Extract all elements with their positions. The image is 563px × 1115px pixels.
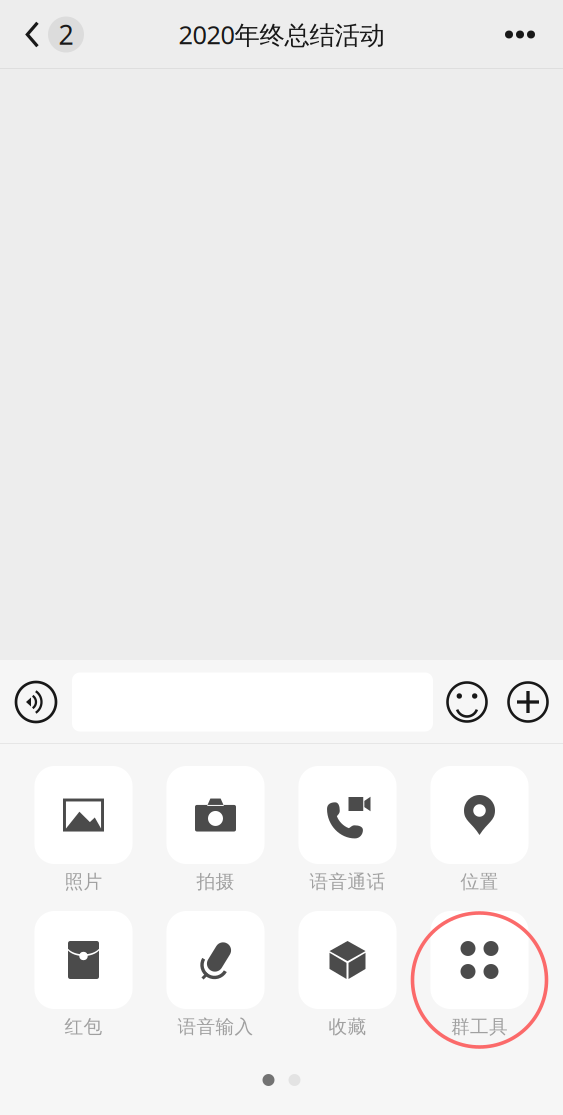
button[interactable]: Emoji	[440, 672, 494, 732]
button[interactable]: Voice message	[0, 660, 72, 744]
staticText: 位置	[460, 870, 498, 893]
staticText: 语音通话	[309, 870, 385, 893]
button[interactable]: Back	[0, 0, 98, 69]
button[interactable]: 照片	[34, 766, 132, 900]
button[interactable]: More	[487, 0, 563, 69]
button[interactable]: More options	[501, 672, 555, 732]
button[interactable]: 语音通话	[298, 766, 396, 900]
staticText: 2	[58, 16, 73, 53]
button[interactable]: 语音输入	[166, 911, 264, 1045]
staticText: 照片	[64, 870, 102, 893]
staticText: 2020年终总结活动	[178, 17, 384, 52]
staticText: 群工具	[451, 1015, 508, 1038]
staticText: 语音输入	[177, 1015, 253, 1038]
button[interactable]: 位置	[430, 766, 528, 900]
button[interactable]: 收藏	[298, 911, 396, 1045]
staticText: 红包	[64, 1015, 102, 1038]
staticText: 收藏	[328, 1015, 366, 1038]
button[interactable]: 群工具	[430, 911, 528, 1045]
button[interactable]: 红包	[34, 911, 132, 1045]
button[interactable]: 拍摄	[166, 766, 264, 900]
staticText: 拍摄	[196, 870, 234, 893]
